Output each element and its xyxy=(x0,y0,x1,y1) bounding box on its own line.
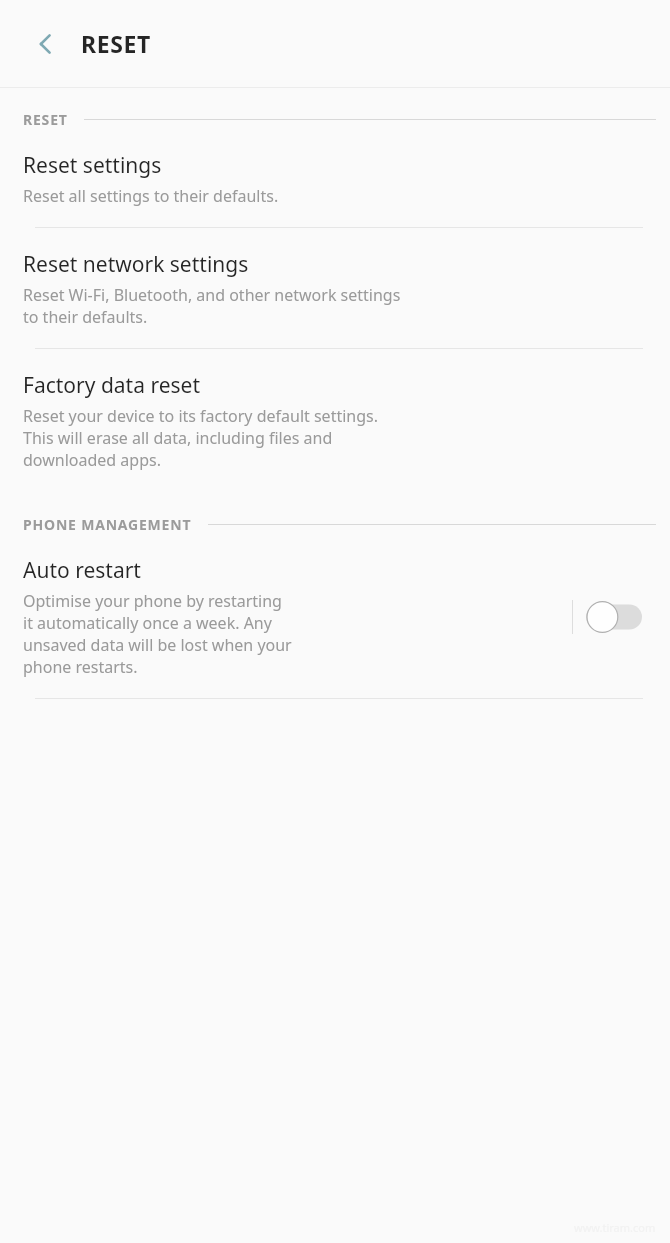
staticText: Reset settings xyxy=(23,151,162,180)
staticText: Auto restart xyxy=(23,556,141,585)
staticText: Reset Wi-Fi, Bluetooth, and other networ… xyxy=(23,284,401,328)
staticText: Factory data reset xyxy=(23,371,200,400)
button[interactable]: Reset network settings xyxy=(0,228,670,348)
staticText: Reset your device to its factory default… xyxy=(23,405,378,471)
staticText: Optimise your phone by restarting it aut… xyxy=(23,590,292,678)
staticText: RESET xyxy=(81,28,151,59)
staticText: RESET xyxy=(23,110,68,129)
staticText: PHONE MANAGEMENT xyxy=(23,515,192,534)
button[interactable]: Auto restart xyxy=(0,534,670,698)
staticText: Reset network settings xyxy=(23,250,249,279)
staticText: Reset all settings to their defaults. xyxy=(23,185,279,207)
button[interactable]: Reset settings xyxy=(0,129,670,227)
button[interactable]: Auto restart toggle, off xyxy=(586,597,642,637)
button[interactable]: Factory data reset xyxy=(0,349,670,491)
button[interactable]: Back xyxy=(18,16,74,72)
